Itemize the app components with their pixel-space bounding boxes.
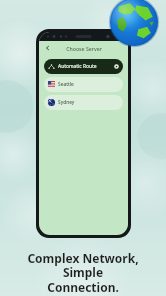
- button[interactable]: Sydney: [44, 95, 123, 110]
- staticText: Sydney: [58, 99, 75, 106]
- staticText: Seattle: [58, 81, 74, 88]
- button[interactable]: Automatic Route: [44, 59, 123, 74]
- button[interactable]: Back: [42, 43, 52, 53]
- staticText: Complex Network, Simple Connection.: [8, 250, 158, 296]
- staticText: Automatic Route: [58, 63, 97, 70]
- button[interactable]: Seattle: [44, 77, 123, 92]
- staticText: Choose Server: [66, 45, 102, 52]
